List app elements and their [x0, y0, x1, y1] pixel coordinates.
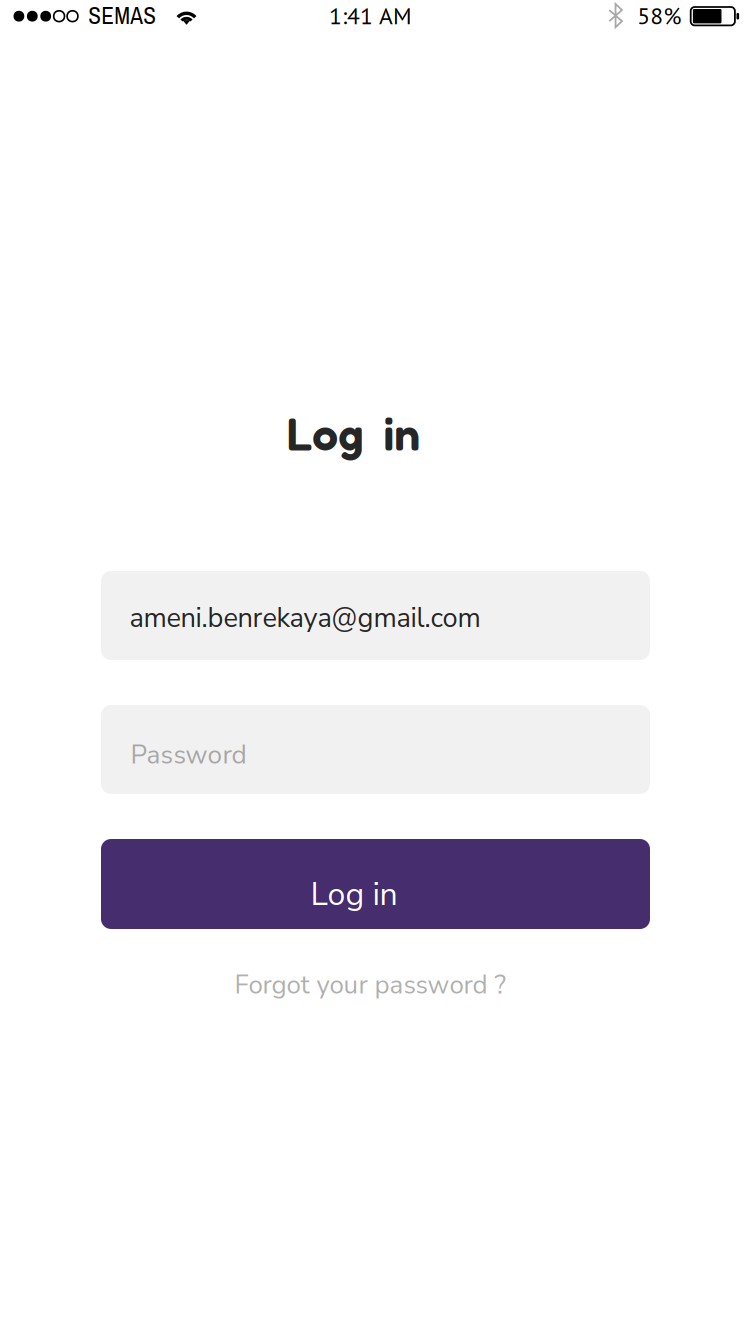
staticText: Log	[286, 406, 363, 461]
staticText: in	[383, 406, 420, 461]
staticText: Forgot your password ?	[234, 967, 505, 1003]
staticText: 1:41 AM	[329, 0, 412, 31]
staticText: ameni.benrekaya@gmail.com	[129, 599, 480, 636]
button[interactable]: ameni.benrekaya@gmail.com	[101, 571, 650, 660]
staticText: SEMAS	[88, 0, 156, 31]
staticText: 58%	[637, 0, 681, 31]
button[interactable]: Log in	[101, 839, 650, 929]
staticText: Log in	[310, 873, 397, 916]
staticText: Password	[130, 737, 246, 773]
button[interactable]: Password	[101, 705, 650, 794]
button[interactable]: Forgot your password ?	[234, 967, 505, 1003]
